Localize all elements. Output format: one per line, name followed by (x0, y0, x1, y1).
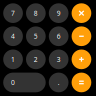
button[interactable]: 1 (3, 49, 23, 69)
staticText: 5 (34, 32, 38, 41)
staticText: . (58, 78, 60, 87)
button[interactable]: 2 (26, 49, 46, 69)
staticText: 0 (11, 78, 15, 87)
button[interactable]: Multiply (72, 3, 91, 23)
staticText: 9 (57, 9, 61, 18)
button[interactable]: Add (72, 49, 91, 69)
staticText: 1 (11, 55, 15, 64)
staticText: 4 (11, 32, 15, 41)
staticText: 7 (11, 9, 15, 18)
button[interactable]: 9 (49, 3, 68, 23)
staticText: 2 (34, 55, 38, 64)
button[interactable]: Subtract (72, 26, 91, 46)
button[interactable]: 5 (26, 26, 46, 46)
button[interactable]: 6 (49, 26, 68, 46)
staticText: 3 (57, 55, 61, 64)
button[interactable]: . (49, 73, 68, 92)
button[interactable]: 7 (3, 3, 23, 23)
button[interactable]: 0 (3, 73, 46, 92)
staticText: 6 (57, 32, 61, 41)
button[interactable]: 8 (26, 3, 46, 23)
button[interactable]: Equals (72, 73, 91, 92)
staticText: 8 (34, 9, 38, 18)
button[interactable]: 3 (49, 49, 68, 69)
button[interactable]: 4 (3, 26, 23, 46)
